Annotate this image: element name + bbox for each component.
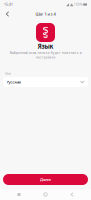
staticText: 100% bbox=[74, 2, 82, 6]
staticText: Язык bbox=[37, 42, 53, 50]
staticText: 15:41 bbox=[4, 2, 13, 7]
staticText: Шаг 1 из 4 bbox=[35, 11, 55, 17]
button[interactable]: Последние приложения bbox=[13, 189, 25, 199]
button[interactable]: Назад bbox=[66, 189, 78, 199]
staticText: Выбранный язык нельзя будет поменять в н… bbox=[9, 50, 81, 59]
button[interactable]: Назад bbox=[2, 8, 13, 19]
staticText: Язык bbox=[4, 71, 11, 76]
button[interactable]: Далее bbox=[3, 174, 88, 185]
button[interactable]: Русский bbox=[3, 77, 88, 87]
staticText: Далее bbox=[40, 177, 51, 182]
button[interactable]: Домой bbox=[39, 189, 51, 199]
staticText: Русский bbox=[6, 79, 20, 85]
